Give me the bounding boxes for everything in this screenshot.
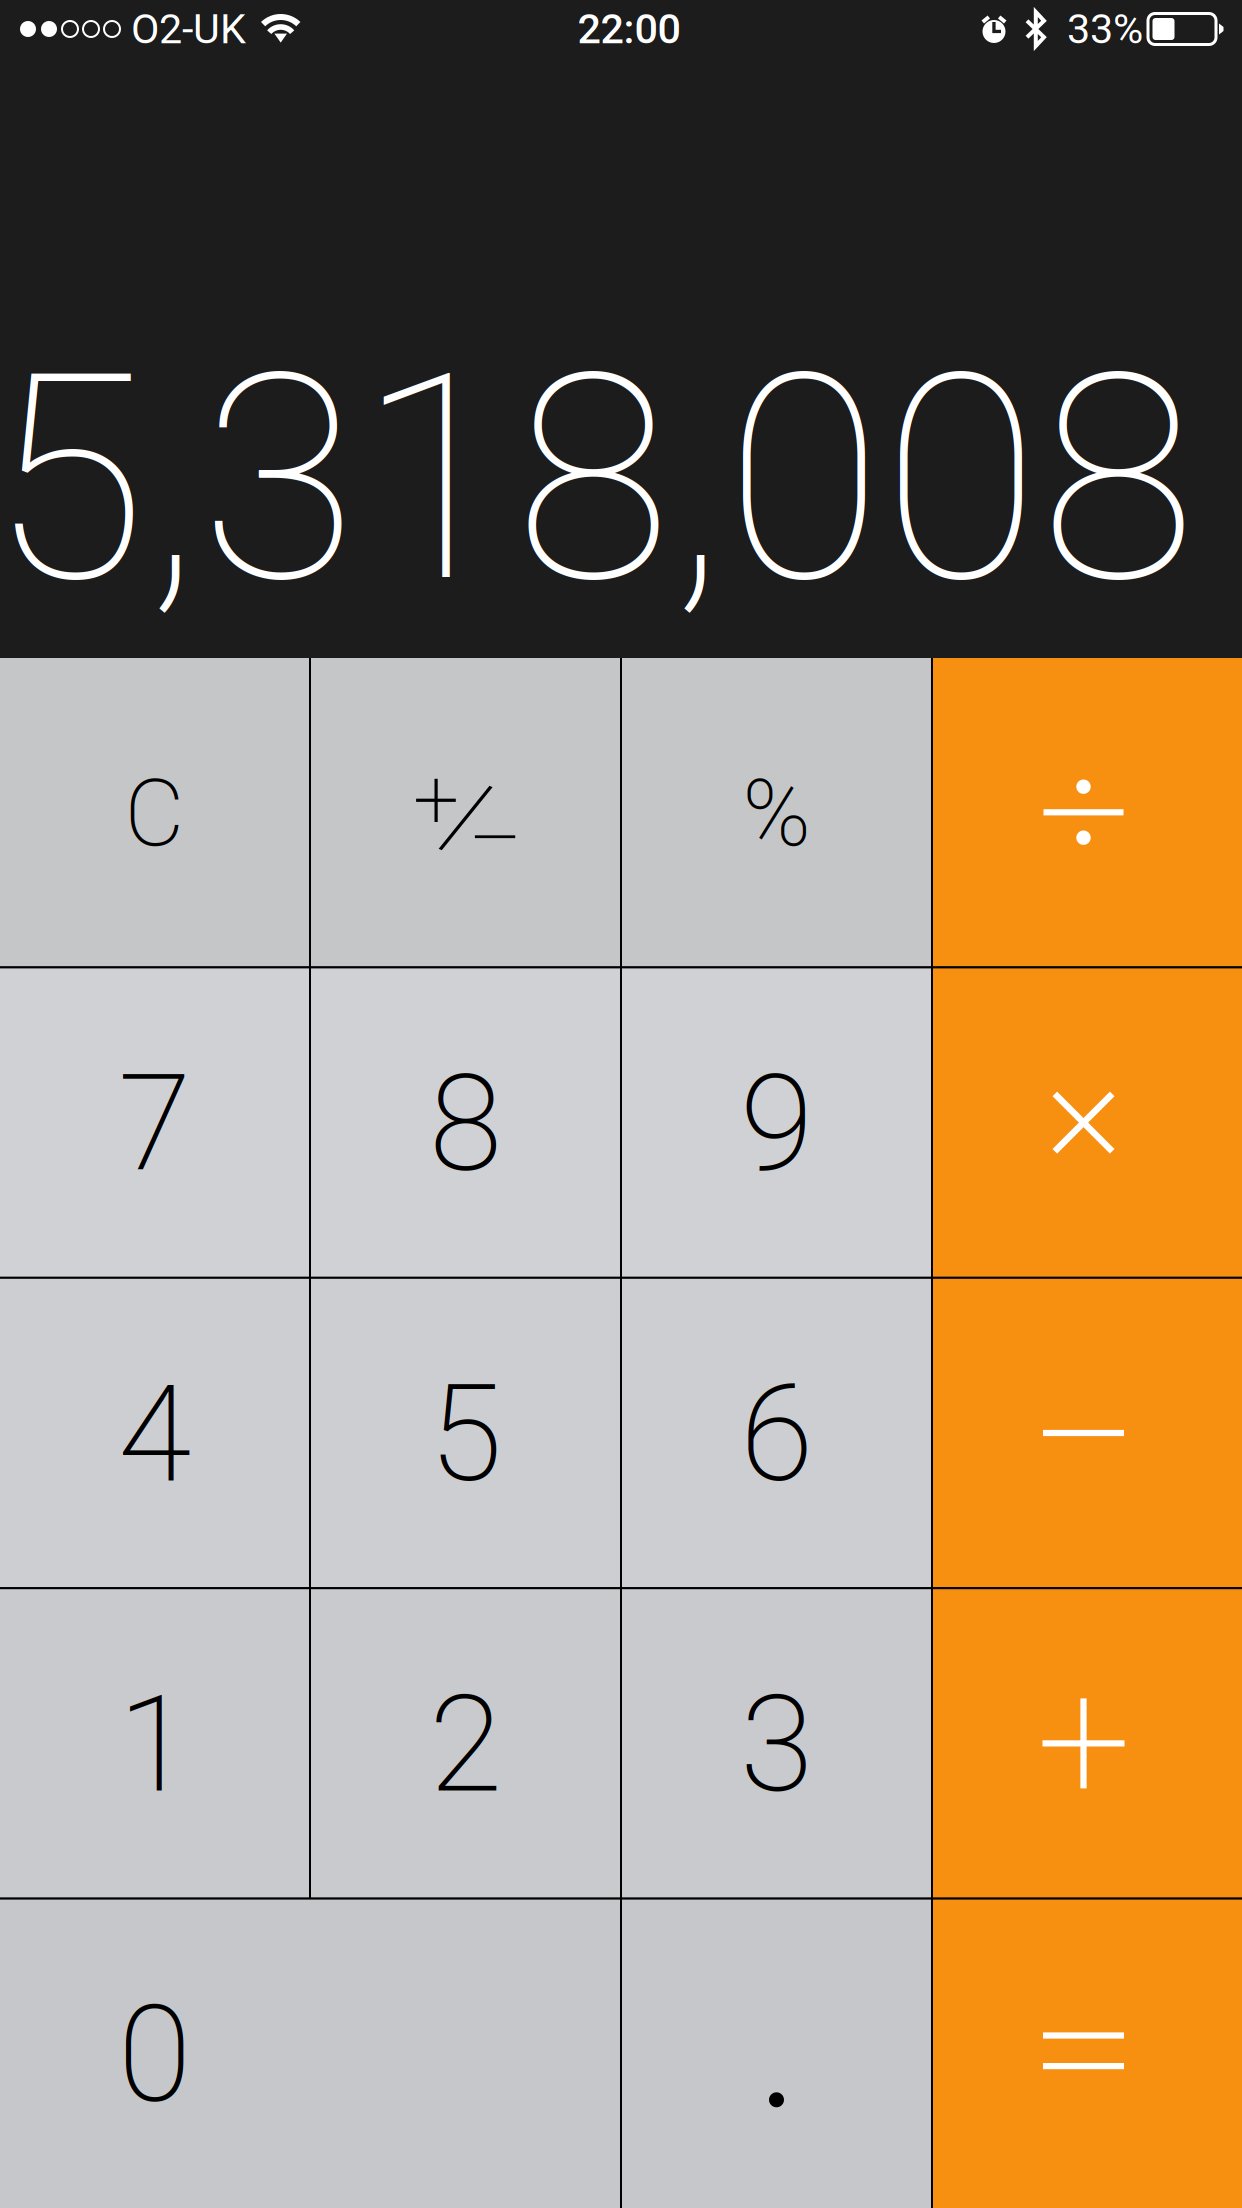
button[interactable]: 0	[0, 1900, 620, 2208]
button[interactable]	[933, 1589, 1242, 1898]
button[interactable]: C	[0, 658, 309, 966]
staticText: 3	[740, 1667, 813, 1823]
button[interactable]	[311, 658, 620, 966]
staticText: 9	[740, 1046, 813, 1202]
staticText: 6	[740, 1356, 813, 1513]
button[interactable]	[933, 658, 1242, 966]
button[interactable]: 4	[0, 1279, 309, 1587]
staticText: 8	[429, 1046, 502, 1202]
button[interactable]: 2	[311, 1589, 620, 1898]
staticText: 22:00	[577, 5, 680, 53]
staticText: 4	[118, 1356, 191, 1513]
staticText: C	[124, 760, 184, 868]
staticText: 33%	[1067, 5, 1143, 53]
button[interactable]: 8	[311, 968, 620, 1277]
staticText: O2-UK	[131, 5, 246, 53]
staticText: %	[742, 760, 810, 868]
button[interactable]	[933, 1900, 1242, 2208]
staticText: 2	[429, 1667, 502, 1823]
staticText: 7	[118, 1046, 191, 1202]
button[interactable]	[933, 1279, 1242, 1587]
button[interactable]: 7	[0, 968, 309, 1277]
button[interactable]: 3	[622, 1589, 931, 1898]
button[interactable]: 1	[0, 1589, 309, 1898]
button[interactable]: 9	[622, 968, 931, 1277]
staticText: 0	[118, 1977, 191, 2133]
button[interactable]: 6	[622, 1279, 931, 1587]
staticText: 5,318,008	[0, 311, 1196, 647]
staticText: 5	[429, 1356, 502, 1513]
button[interactable]: 5	[311, 1279, 620, 1587]
staticText: 1	[118, 1667, 191, 1823]
button[interactable]	[933, 968, 1242, 1277]
button[interactable]	[622, 1900, 931, 2208]
button[interactable]: %	[622, 658, 931, 966]
